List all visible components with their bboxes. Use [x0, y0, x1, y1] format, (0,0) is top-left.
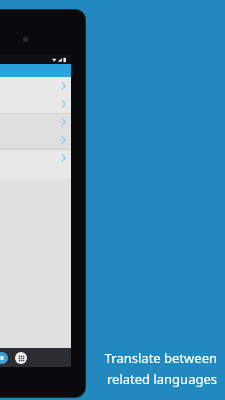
button[interactable] — [0, 113, 71, 131]
button[interactable] — [0, 131, 71, 149]
staticText: related languages — [83, 370, 217, 388]
button[interactable]: Messages — [0, 352, 8, 364]
staticText: Annotations — [0, 67, 1, 74]
button[interactable] — [0, 149, 71, 167]
button[interactable] — [0, 77, 71, 95]
button[interactable]: All apps — [15, 352, 27, 364]
button[interactable] — [0, 95, 71, 113]
staticText: Translate between — [83, 349, 217, 367]
